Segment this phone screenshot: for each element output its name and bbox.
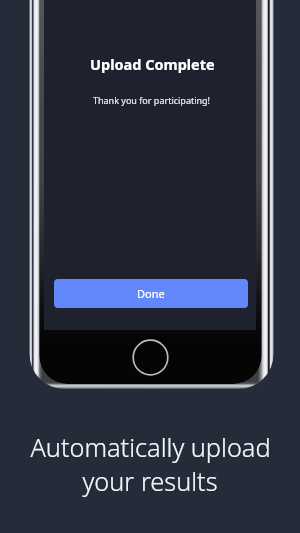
staticText: Done	[137, 286, 165, 301]
staticText: Thank you for participating!	[93, 94, 211, 106]
staticText: Upload Complete	[90, 54, 215, 74]
button[interactable]: Done	[54, 279, 248, 308]
staticText: your results	[82, 464, 218, 498]
staticText: Automatically upload	[30, 430, 271, 464]
